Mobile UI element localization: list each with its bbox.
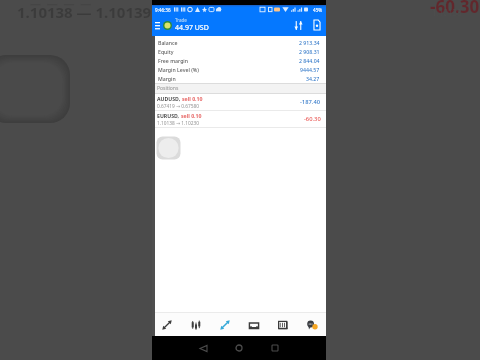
- button[interactable]: EURUSD,: [152, 111, 326, 128]
- staticText: -187.40: [300, 98, 321, 106]
- staticText: Positions: [157, 85, 179, 92]
- staticText: 1.10138 → 1.10230: [157, 120, 200, 127]
- button[interactable]: Recent apps: [264, 337, 286, 359]
- staticText: 2 908.31: [299, 48, 320, 55]
- staticText: AUDUSD,: [157, 95, 182, 102]
- staticText: 34.27: [306, 75, 320, 82]
- staticText: -60.30: [304, 115, 321, 123]
- button[interactable]: Messages: [297, 313, 326, 336]
- staticText: sell 0.10: [182, 95, 203, 102]
- button[interactable]: Charts: [181, 313, 210, 336]
- button[interactable]: Quotes: [152, 313, 181, 336]
- button[interactable]: Open navigation menu: [152, 20, 163, 31]
- staticText: 1.10138 — 1.10139: [17, 2, 152, 22]
- button[interactable]: News: [268, 313, 297, 336]
- button[interactable]: Back: [192, 337, 214, 359]
- staticText: 1.10138: [432, 7, 462, 18]
- button[interactable]: Home: [228, 337, 250, 359]
- staticText: Margin: [158, 75, 176, 82]
- staticText: Margin Level (%): [158, 66, 199, 73]
- staticText: 2 844.04: [299, 57, 320, 64]
- staticText: Free margin: [158, 57, 189, 64]
- staticText: 9444.57: [300, 66, 320, 73]
- staticText: -60.30: [430, 0, 480, 18]
- staticText: 9:46:36: [155, 7, 171, 13]
- staticText: Equity: [158, 48, 174, 55]
- button[interactable]: Trade: [210, 313, 239, 336]
- button[interactable]: History: [239, 313, 268, 336]
- staticText: EURUSD,: [157, 112, 181, 119]
- staticText: 45%: [313, 7, 323, 13]
- button[interactable]: New order: [309, 14, 325, 36]
- staticText: sell 0.10: [181, 112, 202, 119]
- button[interactable]: AUDUSD,: [152, 94, 326, 111]
- button[interactable]: Sort positions: [290, 14, 306, 36]
- staticText: 2 913.34: [299, 39, 320, 46]
- staticText: 44.97 USD: [175, 23, 209, 33]
- staticText: 0.67419 → 0.67580: [157, 103, 200, 110]
- staticText: Balance: [158, 39, 178, 46]
- staticText: — — — —: [30, 0, 92, 11]
- staticText: Trade: [175, 17, 187, 23]
